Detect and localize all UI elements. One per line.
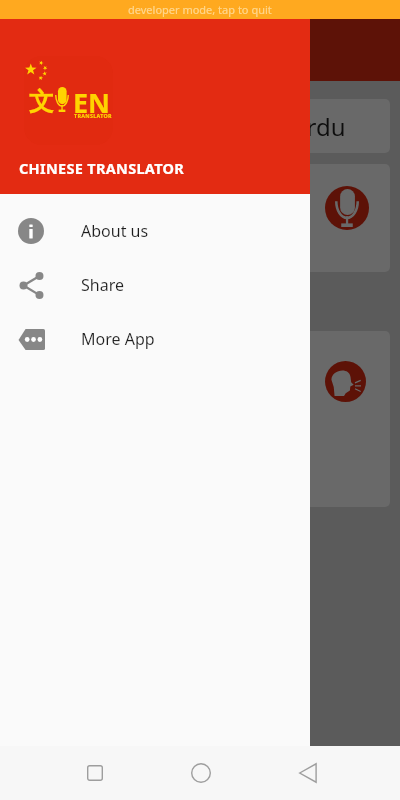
button[interactable]: Chinese	[10, 99, 390, 153]
staticText: TRANSLATOR	[74, 112, 112, 119]
button[interactable]: Listen	[325, 361, 366, 402]
staticText: CHINESE TRANSLATOR	[19, 158, 185, 178]
button[interactable]: Back	[285, 750, 330, 795]
staticText: Share	[81, 274, 124, 296]
button[interactable]: Recent apps	[72, 750, 117, 795]
button[interactable]: Share	[0, 258, 310, 312]
staticText: Urdu	[289, 110, 346, 143]
staticText: 文	[29, 86, 54, 117]
button[interactable]: Speak	[34, 186, 78, 230]
staticText: EN	[73, 84, 111, 121]
button[interactable]: More App	[0, 312, 310, 366]
staticText: Chinese	[30, 110, 289, 143]
button[interactable]: Speak	[325, 186, 369, 230]
button[interactable]: About us	[0, 204, 310, 258]
staticText: About us	[81, 220, 149, 242]
staticText: developer mode, tap to quit	[128, 2, 272, 17]
staticText: More App	[81, 328, 155, 350]
button[interactable]: Open navigation drawer	[14, 33, 48, 67]
button[interactable]: Home	[178, 750, 223, 795]
